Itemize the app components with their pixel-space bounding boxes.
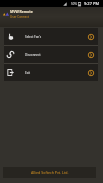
button[interactable]: Select Fan's (4, 28, 98, 45)
staticText: 9:27 PM (84, 1, 100, 6)
other: Disconnect (7, 51, 14, 58)
staticText: Disconnect (25, 53, 41, 57)
button[interactable]: Disconnect (4, 46, 98, 63)
staticText: User Connect (10, 15, 29, 19)
button[interactable]: Exit (4, 64, 98, 81)
other: Select Fan's (7, 33, 14, 40)
staticText: Select Fan's (25, 35, 42, 39)
staticText: Exit (25, 71, 31, 75)
other: Exit (7, 69, 14, 76)
staticText: MVW Remote (10, 9, 33, 14)
staticText: 50% (71, 2, 77, 6)
staticText: Allied Softech Pvt. Ltd. (31, 170, 69, 175)
